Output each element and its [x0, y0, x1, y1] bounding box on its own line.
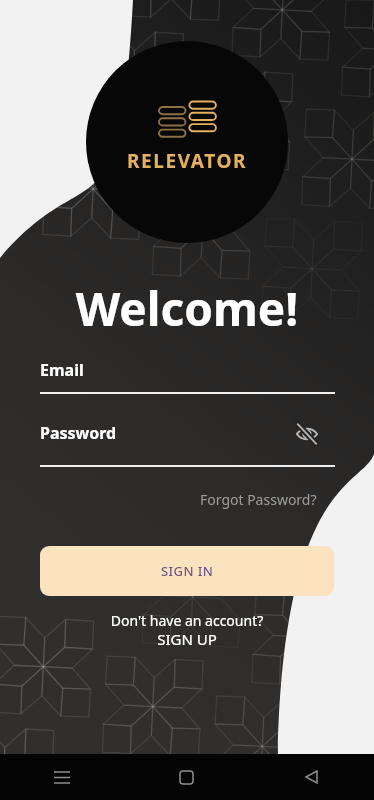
staticText: Email [40, 359, 84, 381]
button[interactable]: Show password [293, 420, 321, 448]
button[interactable]: Recent apps [0, 754, 124, 800]
staticText: RELEVATOR [86, 148, 288, 174]
staticText: Don't have an account? [0, 611, 374, 630]
button[interactable]: Forgot Password? [200, 490, 317, 509]
button[interactable]: Back [249, 754, 374, 800]
button[interactable]: SIGN UP [0, 629, 374, 649]
button[interactable]: Home [124, 754, 249, 800]
button[interactable]: SIGN IN [40, 546, 334, 596]
staticText: Welcome! [0, 277, 374, 340]
staticText: Password [40, 422, 117, 444]
staticText: SIGN IN [161, 562, 214, 580]
